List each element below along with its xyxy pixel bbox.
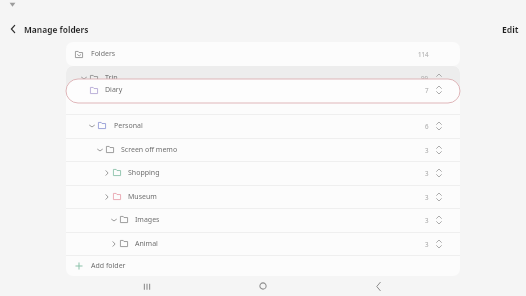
staticText: Folders [91,49,116,59]
button[interactable]: Edit [491,17,526,43]
button[interactable]: Navigate up [2,18,24,40]
staticText: 114 [418,50,429,58]
button[interactable]: Images [66,209,460,232]
staticText: 3 [425,193,429,201]
button[interactable]: Diary [66,79,460,103]
staticText: 7 [425,86,429,94]
staticText: Personal [114,121,143,131]
staticText: 3 [425,146,429,154]
button[interactable]: Shopping [66,162,460,185]
button[interactable]: Museum [66,186,460,209]
staticText: 3 [425,216,429,224]
button[interactable]: Personal [66,115,460,138]
button[interactable]: Folders [66,42,460,66]
button[interactable]: Add folder [66,256,460,276]
button[interactable]: Home [249,276,277,296]
staticText: Museum [128,192,157,202]
staticText: 3 [425,169,429,177]
staticText: Add folder [91,261,126,271]
staticText: Animal [135,239,158,249]
button[interactable]: Animal [66,233,460,256]
staticText: Diary [105,85,123,95]
staticText: Manage folders [24,24,89,35]
staticText: 3 [425,240,429,248]
staticText: Screen off memo [121,145,178,155]
button[interactable]: Recent apps [133,276,161,296]
staticText: Trip [105,73,118,83]
staticText: 6 [425,122,429,130]
staticText: Shopping [128,168,160,178]
button[interactable]: Back [364,276,392,296]
staticText: 99 [421,74,429,82]
staticText: Edit [502,24,519,36]
button[interactable]: Screen off memo [66,139,460,162]
button[interactable]: Trip [66,66,460,92]
staticText: Images [135,215,160,225]
